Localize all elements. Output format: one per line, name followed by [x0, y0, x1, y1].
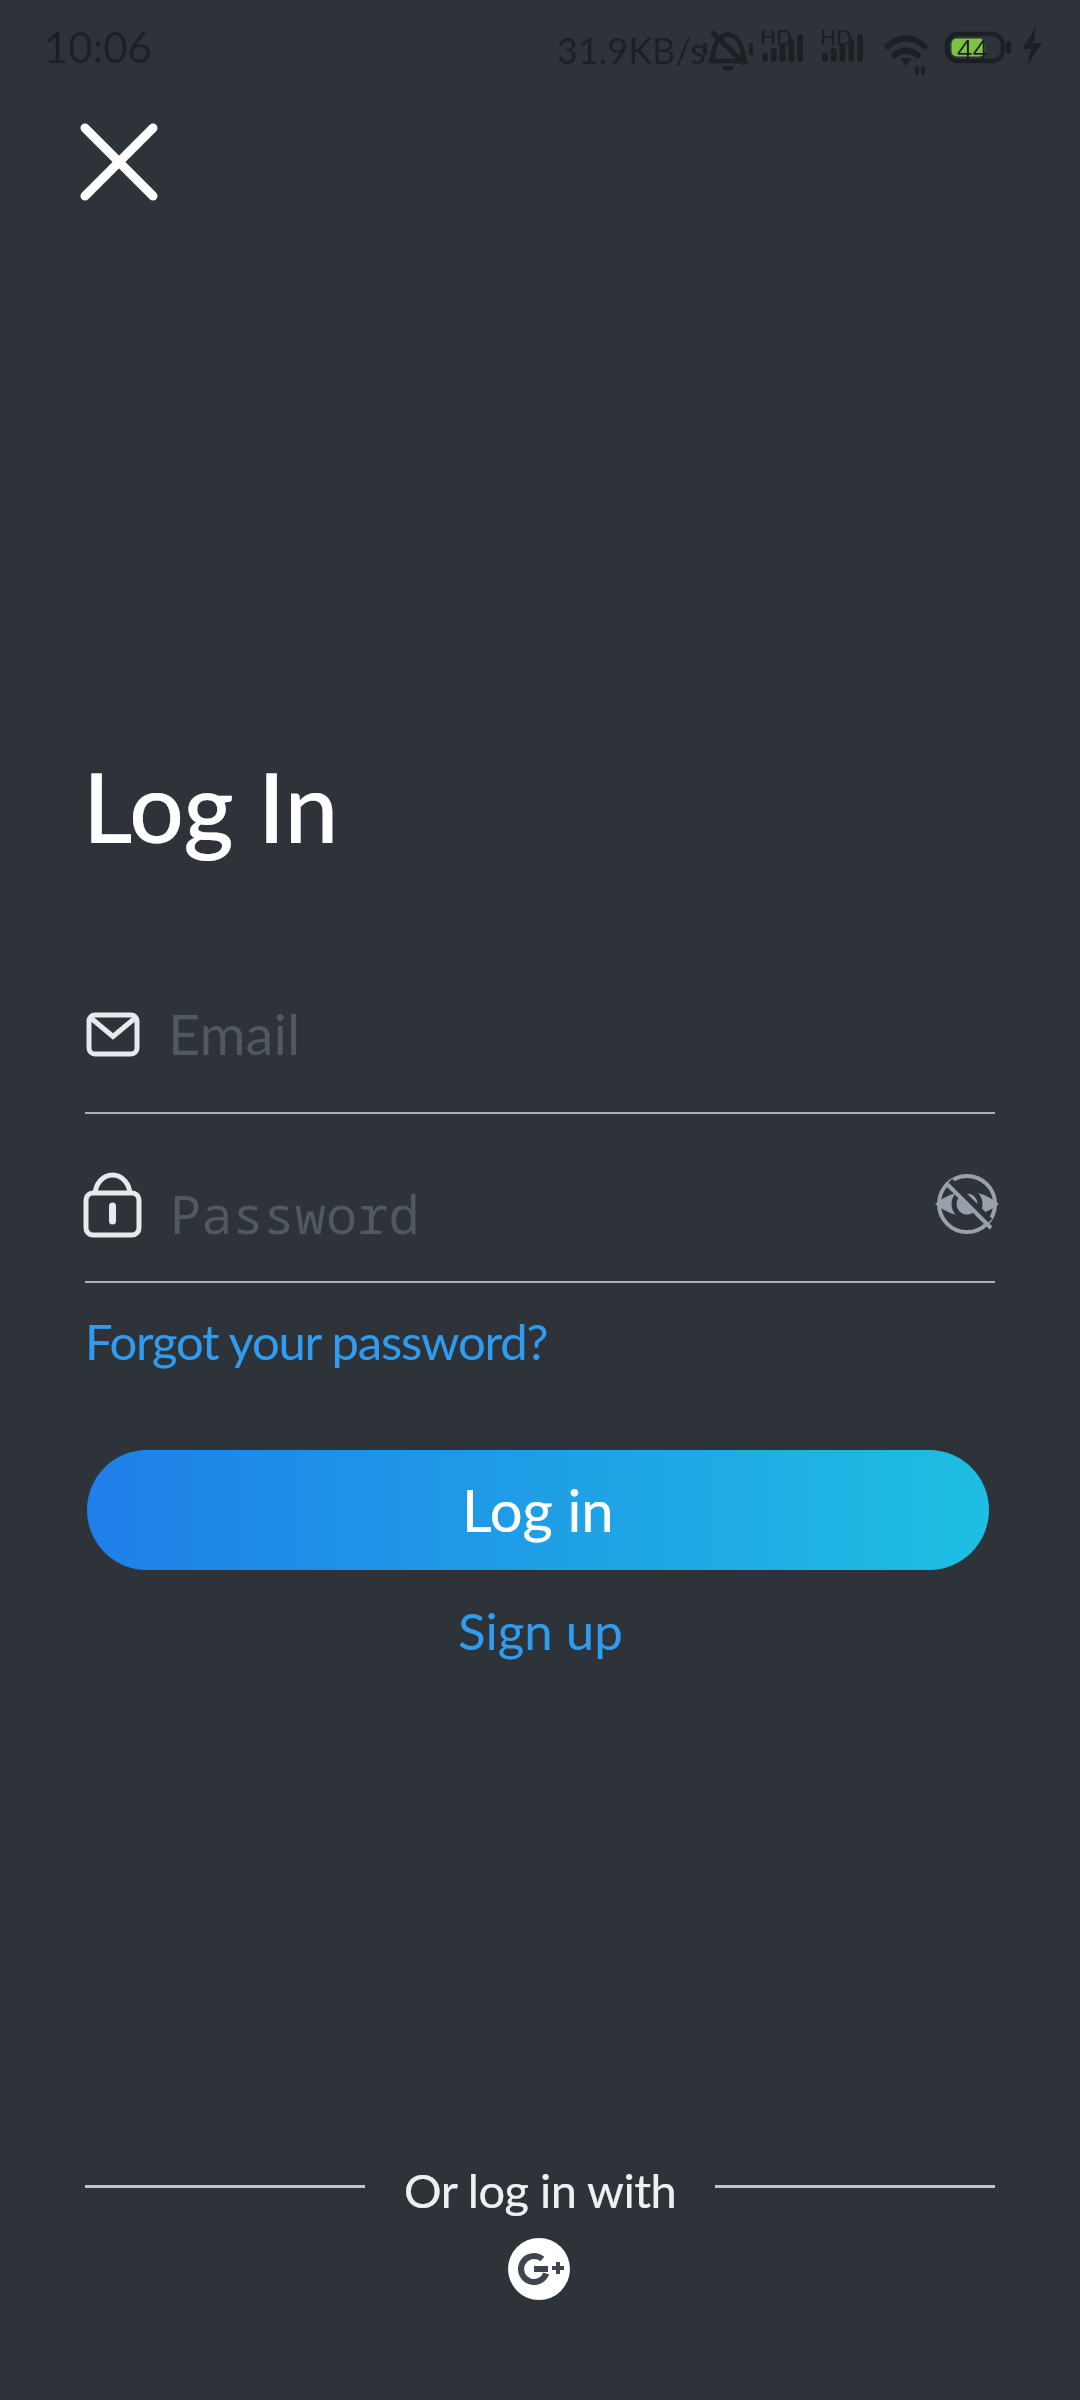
staticText: Password: [170, 1178, 420, 1249]
button[interactable]: [85, 990, 995, 1114]
button[interactable]: [70, 113, 168, 211]
staticText: 44: [957, 33, 989, 65]
staticText: HD: [820, 24, 853, 49]
button[interactable]: [925, 1162, 1009, 1246]
staticText: HD: [760, 24, 793, 49]
staticText: Log In: [83, 748, 339, 863]
button[interactable]: [508, 2238, 570, 2300]
staticText: Or log in with: [404, 2162, 677, 2218]
staticText: Email: [168, 1000, 301, 1067]
staticText: 10:06: [44, 22, 152, 72]
button[interactable]: [85, 1160, 995, 1283]
staticText: 31.9KB/s: [557, 28, 706, 71]
staticText: Log in: [462, 1475, 614, 1545]
button[interactable]: Log in: [87, 1450, 989, 1570]
button[interactable]: Sign up: [458, 1600, 623, 1661]
button[interactable]: Forgot your password?: [85, 1312, 548, 1371]
